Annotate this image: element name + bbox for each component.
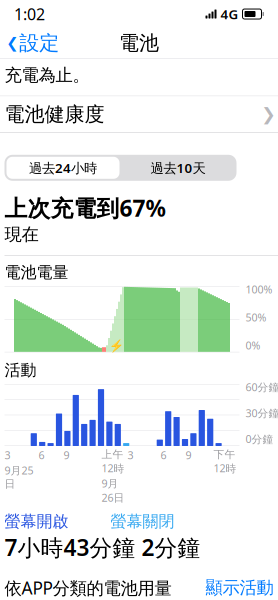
staticText: ⚡ <box>108 339 123 352</box>
staticText: 現在 <box>4 224 38 245</box>
button[interactable]: 顯示活動 <box>205 577 273 598</box>
staticText: 9 <box>185 448 191 462</box>
staticText: 螢幕開啟 <box>4 512 68 531</box>
button[interactable]: 電池健康度 <box>0 96 278 132</box>
staticText: 7小時43分鐘 <box>4 532 135 562</box>
staticText: 螢幕關閉 <box>110 512 174 531</box>
staticText: 6 <box>160 448 166 462</box>
staticText: 電池電量 <box>4 263 68 282</box>
staticText: ❮ <box>6 35 18 51</box>
staticText: 依APP分類的電池用量 <box>4 576 171 599</box>
staticText: 100% <box>245 282 272 296</box>
staticText: 過去24小時 <box>29 159 97 177</box>
staticText: 設定 <box>19 31 59 55</box>
button[interactable]: ❮ <box>0 26 59 60</box>
staticText: 3 <box>4 448 10 462</box>
staticText: 30分鐘 <box>245 406 278 420</box>
staticText: 過去10天 <box>150 159 205 177</box>
staticText: 4G <box>220 5 238 23</box>
staticText: 0% <box>245 338 260 352</box>
button[interactable]: 螢幕關閉 <box>110 512 174 531</box>
staticText: 2分鐘 <box>141 532 200 562</box>
staticText: 電池 <box>119 31 159 55</box>
staticText: 6 <box>38 448 44 462</box>
staticText: 下午 12時 <box>213 448 236 475</box>
staticText: 50% <box>245 310 266 324</box>
button[interactable]: 過去24小時 <box>6 157 119 179</box>
staticText: 9月25日 <box>4 463 33 490</box>
staticText: 電池健康度 <box>4 102 104 127</box>
staticText: 充電為止。 <box>4 64 89 86</box>
button[interactable]: 過去10天 <box>121 157 234 179</box>
staticText: 60分鐘 <box>245 380 278 394</box>
staticText: 1:02 <box>14 3 45 25</box>
staticText: ❯ <box>261 104 276 124</box>
staticText: 上次充電到67% <box>4 193 165 223</box>
button[interactable]: 螢幕開啟 <box>4 512 68 531</box>
staticText: 顯示活動 <box>205 577 273 598</box>
staticText: 9 <box>63 448 69 462</box>
staticText: 上午 12時 <box>101 448 124 475</box>
staticText: 0分鐘 <box>245 432 273 446</box>
staticText: 3 <box>127 448 133 462</box>
staticText: 9月26日 <box>101 476 124 505</box>
staticText: 活動 <box>4 360 36 380</box>
